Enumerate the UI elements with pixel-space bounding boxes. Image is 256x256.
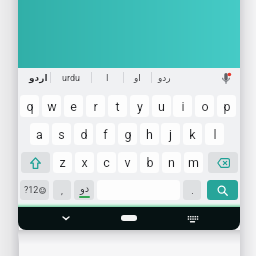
- button[interactable]: Symbols and emoji: [20, 180, 49, 200]
- button[interactable]: u: [152, 95, 171, 117]
- button[interactable]: j: [161, 123, 180, 145]
- button[interactable]: Backspace: [208, 152, 238, 173]
- staticText: ردو: [158, 73, 171, 83]
- staticText: t: [115, 99, 120, 114]
- staticText: اردو: [29, 73, 48, 83]
- staticText: m: [188, 155, 199, 170]
- button[interactable]: a: [30, 123, 49, 145]
- staticText: a: [36, 127, 43, 142]
- staticText: s: [58, 127, 65, 142]
- button[interactable]: l: [205, 123, 224, 145]
- button[interactable]: دو: [74, 180, 94, 200]
- staticText: z: [59, 155, 66, 170]
- staticText: o: [201, 99, 209, 114]
- staticText: ?12: [24, 185, 39, 196]
- button[interactable]: او: [121, 68, 153, 88]
- staticText: y: [137, 99, 143, 114]
- staticText: e: [70, 99, 77, 114]
- staticText: u: [158, 99, 165, 114]
- staticText: g: [124, 127, 132, 142]
- button[interactable]: h: [140, 123, 159, 145]
- staticText: k: [189, 127, 196, 142]
- staticText: w: [47, 99, 57, 114]
- staticText: f: [103, 127, 108, 142]
- button[interactable]: ,: [53, 180, 71, 200]
- button[interactable]: ردو: [148, 68, 180, 88]
- button[interactable]: e: [64, 95, 83, 117]
- button[interactable]: t: [108, 95, 127, 117]
- button[interactable]: ا: [91, 68, 123, 88]
- staticText: c: [103, 155, 110, 170]
- button[interactable]: v: [118, 152, 137, 173]
- staticText: .: [191, 185, 194, 196]
- button[interactable]: Hide keyboard: [56, 208, 76, 228]
- button[interactable]: n: [162, 152, 181, 173]
- staticText: i: [181, 99, 185, 114]
- button[interactable]: Home: [121, 215, 137, 221]
- button[interactable]: f: [96, 123, 115, 145]
- button[interactable]: c: [97, 152, 116, 173]
- staticText: v: [124, 155, 131, 170]
- staticText: d: [80, 127, 88, 142]
- button[interactable]: g: [118, 123, 137, 145]
- staticText: ,: [61, 185, 63, 196]
- staticText: h: [146, 127, 153, 142]
- button[interactable]: .: [183, 180, 201, 200]
- button[interactable]: Voice input: [216, 68, 236, 88]
- button[interactable]: s: [52, 123, 71, 145]
- button[interactable]: Shift: [21, 152, 50, 173]
- button[interactable]: i: [173, 95, 192, 117]
- button[interactable]: urdu: [55, 68, 87, 88]
- button[interactable]: z: [53, 152, 72, 173]
- staticText: دو: [80, 183, 90, 195]
- button[interactable]: q: [20, 95, 39, 117]
- button[interactable]: اردو: [22, 68, 54, 88]
- button[interactable]: o: [195, 95, 214, 117]
- button[interactable]: d: [74, 123, 93, 145]
- button[interactable]: p: [217, 95, 236, 117]
- button[interactable]: y: [130, 95, 149, 117]
- staticText: p: [223, 99, 231, 114]
- button[interactable]: x: [75, 152, 94, 173]
- staticText: او: [134, 73, 141, 83]
- staticText: r: [93, 99, 98, 114]
- button[interactable]: Switch keyboard: [182, 208, 202, 228]
- staticText: urdu: [62, 73, 80, 84]
- staticText: ا: [106, 73, 109, 83]
- staticText: x: [81, 155, 88, 170]
- button[interactable]: m: [184, 152, 203, 173]
- button[interactable]: b: [140, 152, 159, 173]
- staticText: q: [26, 99, 34, 114]
- button[interactable]: k: [183, 123, 202, 145]
- staticText: n: [168, 155, 175, 170]
- button[interactable]: Search: [207, 180, 238, 200]
- button[interactable]: w: [42, 95, 61, 117]
- staticText: b: [146, 155, 154, 170]
- button[interactable]: r: [86, 95, 105, 117]
- staticText: j: [169, 127, 172, 142]
- staticText: l: [213, 127, 217, 142]
